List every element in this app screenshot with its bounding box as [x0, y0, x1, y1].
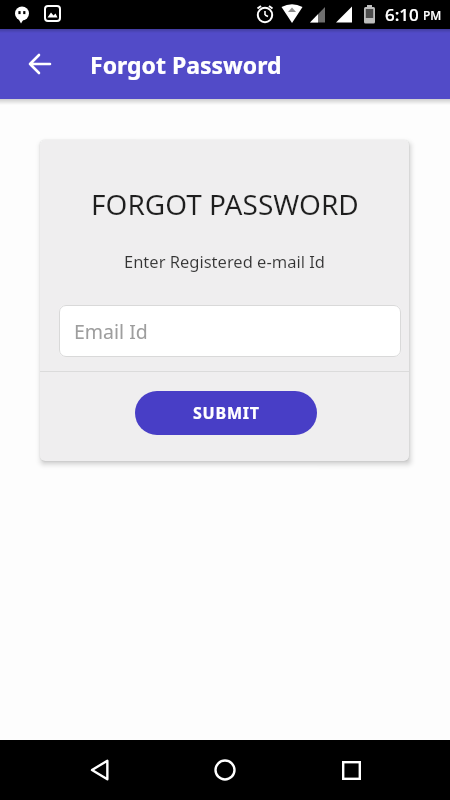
staticText: Enter Registered e-mail Id	[124, 250, 325, 272]
button[interactable]	[36, 740, 162, 800]
button[interactable]	[288, 740, 414, 800]
staticText: 6:10	[385, 3, 419, 26]
staticText: PM	[423, 7, 442, 23]
button[interactable]: Email Id	[59, 305, 401, 357]
staticText: FORGOT PASSWORD	[91, 185, 359, 223]
staticText: Forgot Password	[90, 49, 282, 80]
staticText: SUBMIT	[193, 402, 260, 424]
button[interactable]	[20, 44, 60, 84]
button[interactable]: SUBMIT	[135, 391, 317, 435]
button[interactable]	[162, 740, 288, 800]
staticText: Email Id	[74, 318, 148, 345]
